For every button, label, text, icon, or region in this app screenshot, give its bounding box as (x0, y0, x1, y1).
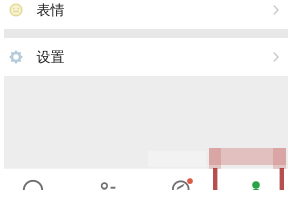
button[interactable]: 发现 (149, 168, 211, 198)
staticText: 表情 (36, 1, 64, 19)
button[interactable]: 通讯录 (78, 168, 140, 198)
button[interactable]: 我 (225, 168, 287, 198)
staticText: 设置 (36, 48, 64, 66)
button[interactable]: 设置 (4, 38, 288, 76)
button[interactable]: 微信 (2, 168, 64, 198)
button[interactable]: 表情 (4, 0, 288, 29)
